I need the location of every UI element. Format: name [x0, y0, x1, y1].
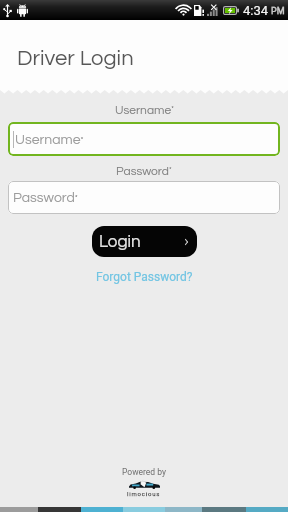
staticText: Username* [15, 133, 84, 147]
staticText: 4:34 [243, 3, 269, 18]
button[interactable]: Password* [8, 181, 280, 214]
staticText: Password* [13, 191, 78, 205]
staticText: Login [99, 233, 141, 251]
staticText: limocious [127, 490, 161, 497]
button[interactable]: Username* [8, 122, 280, 156]
staticText: PM [271, 6, 285, 17]
staticText: Driver Login [17, 47, 134, 70]
button[interactable]: Forgot Password? [90, 267, 199, 287]
button[interactable]: Login [92, 226, 197, 257]
staticText: Powered by [122, 467, 167, 477]
staticText: Password* [116, 165, 172, 177]
staticText: Username* [115, 104, 174, 116]
